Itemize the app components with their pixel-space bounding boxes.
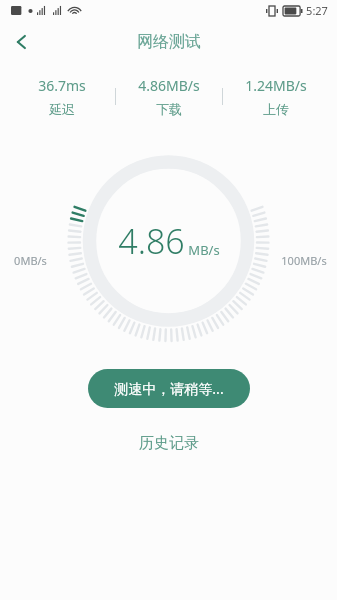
- staticText: MB/s: [188, 241, 220, 259]
- button[interactable]: 测速中，请稍等...: [88, 369, 250, 408]
- staticText: 5:27: [306, 3, 328, 18]
- staticText: 0MB/s: [14, 253, 47, 268]
- staticText: 上传: [263, 101, 289, 117]
- button[interactable]: 历史记录: [119, 426, 219, 461]
- button[interactable]: 36.7ms: [8, 76, 115, 117]
- button[interactable]: 4.86MB/s: [116, 76, 222, 117]
- staticText: 4.86: [118, 218, 185, 264]
- staticText: 历史记录: [139, 434, 199, 453]
- button[interactable]: Back: [0, 20, 44, 64]
- staticText: 100MB/s: [281, 253, 327, 268]
- staticText: 4.86MB/s: [138, 76, 200, 95]
- staticText: 36.7ms: [38, 76, 86, 95]
- staticText: 测速中，请稍等...: [114, 379, 224, 398]
- button[interactable]: 1.24MB/s: [223, 76, 329, 117]
- staticText: 网络测试: [137, 32, 201, 52]
- staticText: 延迟: [49, 101, 75, 117]
- staticText: 1.24MB/s: [245, 76, 307, 95]
- staticText: 下载: [156, 101, 182, 117]
